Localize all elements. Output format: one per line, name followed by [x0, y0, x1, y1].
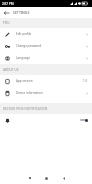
button[interactable]: Back — [0, 7, 12, 18]
staticText: Device information — [16, 91, 43, 95]
button[interactable] — [0, 114, 92, 126]
button[interactable]: Device information — [0, 87, 92, 99]
staticText: SETTINGS — [13, 10, 30, 15]
staticText: 1.0 — [83, 79, 88, 83]
button[interactable]: Home — [38, 172, 55, 184]
button[interactable]: Edit profile — [0, 28, 92, 40]
staticText: 2:57 PM — [2, 2, 14, 6]
button[interactable]: Language — [0, 52, 92, 64]
staticText: ABOUT US — [3, 68, 19, 72]
staticText: YOU — [3, 21, 10, 25]
button[interactable]: Change password — [0, 40, 92, 52]
button[interactable]: Recent apps — [21, 172, 38, 184]
staticText: RECEIVE PUSH NOTIFICATION — [3, 107, 48, 111]
button[interactable]: App version — [0, 75, 92, 87]
staticText: App version — [16, 79, 33, 83]
staticText: Edit profile — [16, 32, 32, 36]
staticText: Change password — [16, 44, 42, 48]
button[interactable]: Back — [55, 172, 72, 184]
staticText: Language — [16, 56, 31, 60]
